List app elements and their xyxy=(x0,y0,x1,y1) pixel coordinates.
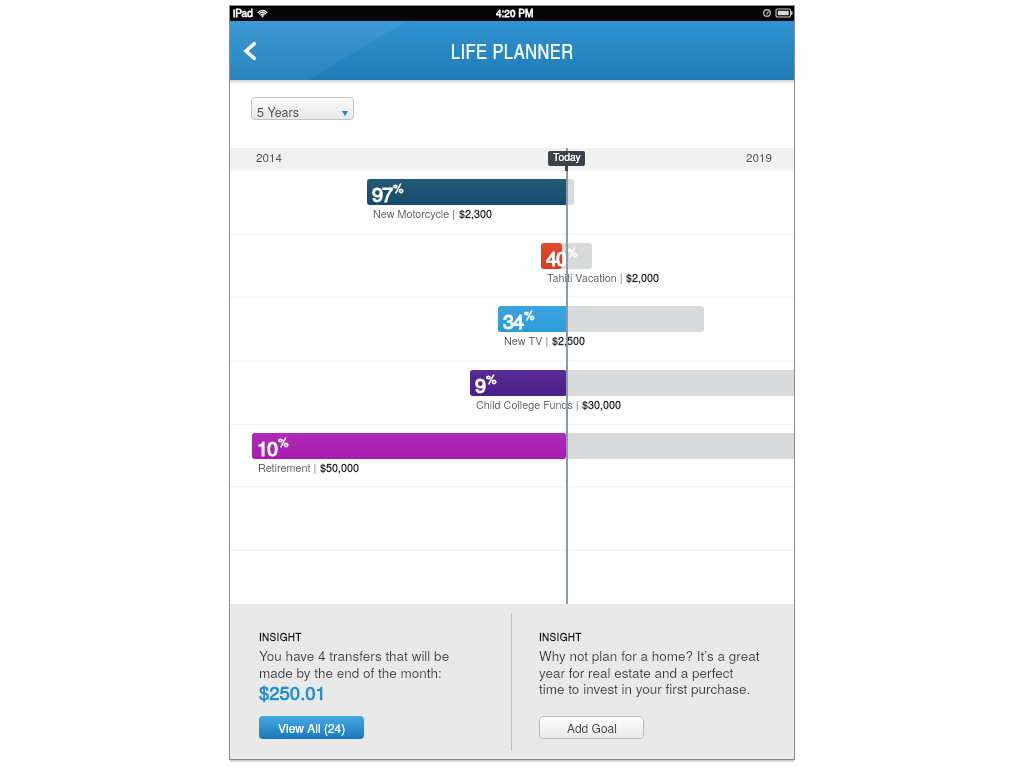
staticText: $30,000 xyxy=(582,397,622,412)
staticText: % xyxy=(393,179,404,196)
staticText: 97 xyxy=(372,179,393,208)
button[interactable]: 5 Years xyxy=(251,97,354,120)
staticText: 40 xyxy=(546,243,567,272)
staticText: New Motorcycle | xyxy=(373,206,459,221)
button[interactable]: View All (24) xyxy=(259,716,364,739)
button[interactable]: Retirement goal, 10 percent xyxy=(229,423,795,487)
staticText: $2,300 xyxy=(459,206,493,221)
staticText: New TV | xyxy=(504,333,552,348)
staticText: View All (24) xyxy=(278,719,346,736)
staticText: 4:20 PM xyxy=(496,6,534,20)
staticText: $2,500 xyxy=(552,333,586,348)
button[interactable]: Tahiti Vacation goal, 40 percent xyxy=(229,233,795,297)
staticText: Retirement | xyxy=(258,460,320,475)
staticText: $2,000 xyxy=(626,270,660,285)
staticText: % xyxy=(278,433,289,450)
button[interactable]: Child College Funds goal, 9 percent xyxy=(229,360,795,424)
staticText: 2014 xyxy=(256,149,282,166)
staticText: 10 xyxy=(257,433,278,462)
staticText: 2019 xyxy=(746,149,772,166)
staticText: 5 Years xyxy=(257,103,300,120)
staticText: Tahiti Vacation | xyxy=(547,270,626,285)
button[interactable]: New Motorcycle goal, 97 percent xyxy=(229,169,795,233)
staticText: 34 xyxy=(503,306,524,335)
staticText: % xyxy=(567,243,578,260)
staticText: Child College Funds | xyxy=(476,397,582,412)
staticText: % xyxy=(524,306,535,323)
staticText: You have 4 transfers that will be made b… xyxy=(259,646,450,682)
button[interactable]: New TV goal, 34 percent xyxy=(229,296,795,360)
staticText: $50,000 xyxy=(320,460,360,475)
button[interactable]: Add Goal xyxy=(539,716,644,739)
staticText: Why not plan for a home? It’s a great ye… xyxy=(539,646,760,698)
staticText: LIFE PLANNER xyxy=(451,37,574,64)
staticText: Add Goal xyxy=(567,719,617,736)
staticText: Today xyxy=(553,151,581,164)
staticText: 9 xyxy=(475,370,486,399)
staticText: iPad xyxy=(233,6,253,20)
button[interactable]: Back xyxy=(231,32,269,70)
staticText: INSIGHT xyxy=(539,630,582,644)
staticText: INSIGHT xyxy=(259,630,302,644)
staticText: % xyxy=(486,370,497,387)
staticText: $250.01 xyxy=(259,679,326,705)
